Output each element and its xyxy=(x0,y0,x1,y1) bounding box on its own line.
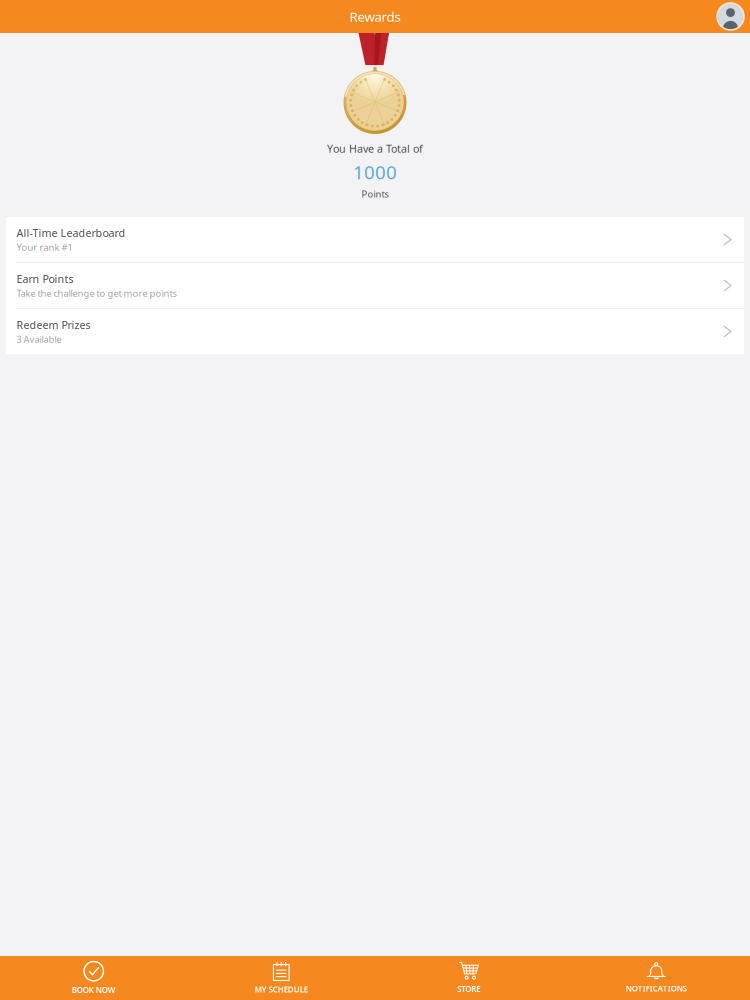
staticText: Take the challenge to get more points xyxy=(16,287,176,299)
staticText: Earn Points xyxy=(16,272,73,286)
button[interactable]: Redeem Prizes xyxy=(6,309,744,354)
button[interactable]: Earn Points xyxy=(6,263,744,308)
staticText: BOOK NOW xyxy=(72,985,116,995)
button[interactable]: MY SCHEDULE xyxy=(187,956,375,1000)
staticText: NOTIFICATIONS xyxy=(626,983,687,994)
staticText: 1000 xyxy=(353,160,397,184)
staticText: All-Time Leaderboard xyxy=(16,226,125,240)
staticText: MY SCHEDULE xyxy=(255,984,308,995)
button[interactable]: BOOK NOW xyxy=(0,956,187,1000)
button[interactable]: Profile xyxy=(717,3,744,30)
staticText: Redeem Prizes xyxy=(16,318,90,332)
staticText: Your rank #1 xyxy=(16,241,72,253)
staticText: Rewards xyxy=(349,8,400,25)
staticText: 3 Available xyxy=(16,333,61,345)
button[interactable]: NOTIFICATIONS xyxy=(562,957,750,999)
staticText: STORE xyxy=(457,984,480,994)
button[interactable]: All-Time Leaderboard xyxy=(6,217,744,262)
staticText: You Have a Total of xyxy=(327,141,423,156)
staticText: Points xyxy=(361,188,388,200)
button[interactable]: STORE xyxy=(375,957,562,999)
